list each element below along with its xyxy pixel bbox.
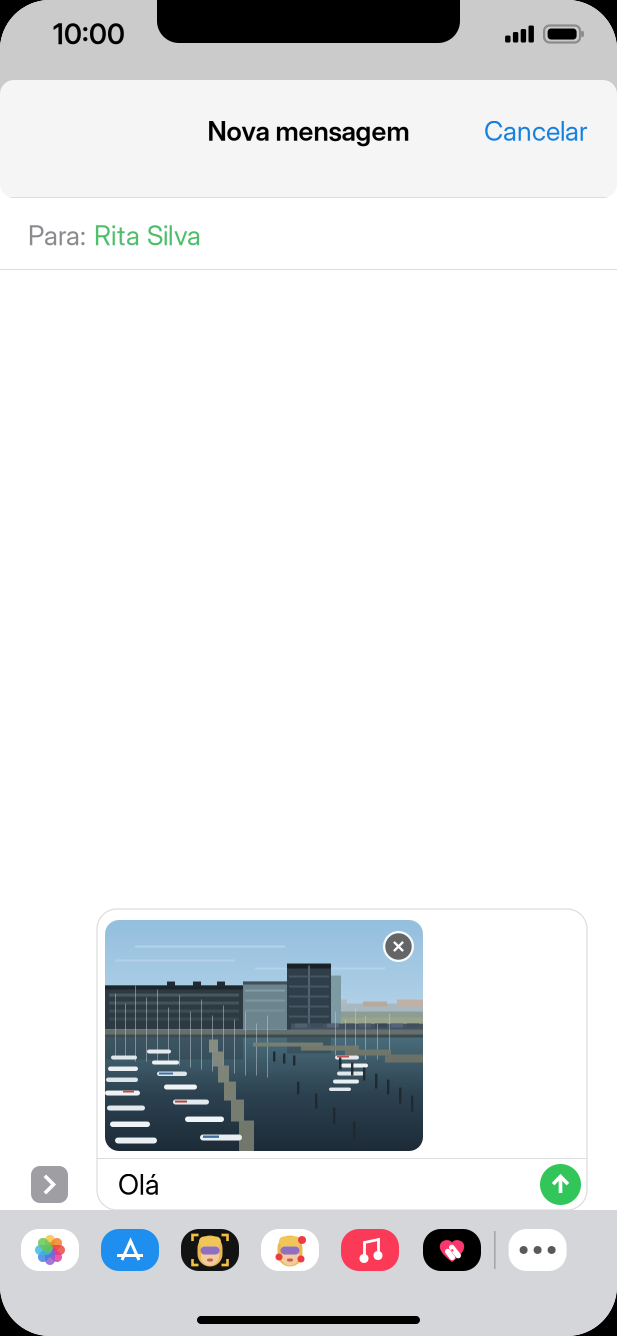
button[interactable]: Autocolantes bbox=[261, 1229, 319, 1271]
button[interactable]: Cancelar bbox=[438, 103, 588, 159]
button[interactable]: Mais opções bbox=[31, 1166, 68, 1203]
button[interactable]: App Store bbox=[101, 1229, 159, 1271]
staticText: Olá bbox=[118, 1168, 159, 1201]
button[interactable]: Mais bbox=[509, 1229, 567, 1271]
button[interactable]: Música bbox=[341, 1229, 399, 1271]
staticText: Nova mensagem bbox=[207, 115, 409, 147]
button[interactable]: Fitness bbox=[423, 1229, 481, 1271]
staticText: Rita Silva bbox=[94, 219, 201, 252]
button[interactable]: Fotos bbox=[21, 1229, 79, 1271]
staticText: Para: bbox=[28, 219, 86, 252]
button[interactable]: Enviar bbox=[540, 1164, 581, 1205]
button[interactable]: Memoji bbox=[181, 1229, 239, 1271]
staticText: 10:00 bbox=[53, 17, 125, 51]
staticText: Cancelar bbox=[484, 115, 588, 147]
button[interactable]: Remover anexo bbox=[383, 931, 414, 962]
